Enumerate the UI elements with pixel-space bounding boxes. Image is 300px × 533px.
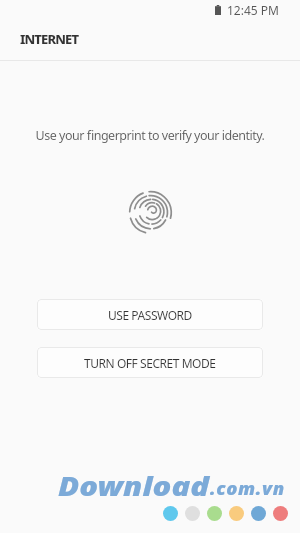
staticText: INTERNET: [20, 30, 79, 48]
button[interactable]: USE PASSWORD: [37, 299, 263, 330]
staticText: Use your fingerprint to verify your iden…: [0, 127, 300, 144]
staticText: 12:45 PM: [227, 2, 279, 18]
staticText: TURN OFF SECRET MODE: [84, 355, 216, 371]
staticText: USE PASSWORD: [108, 307, 192, 323]
other: Battery: [215, 5, 221, 15]
button[interactable]: TURN OFF SECRET MODE: [37, 347, 263, 378]
